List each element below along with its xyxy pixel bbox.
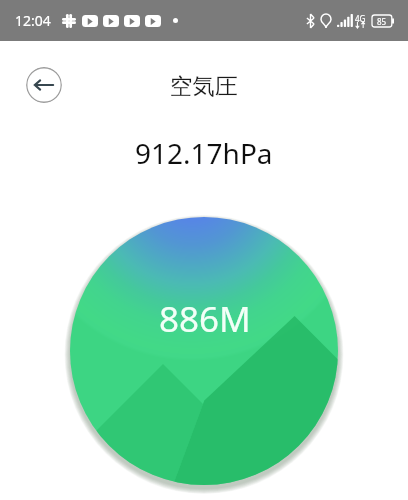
staticText: 4G	[355, 13, 366, 24]
staticText: 912.17hPa	[135, 134, 273, 172]
staticText: 空気圧	[170, 72, 238, 100]
staticText: 85	[377, 16, 387, 27]
button[interactable]: Back	[26, 67, 62, 103]
staticText: 12:04	[15, 11, 51, 30]
staticText: 886M	[159, 295, 251, 343]
